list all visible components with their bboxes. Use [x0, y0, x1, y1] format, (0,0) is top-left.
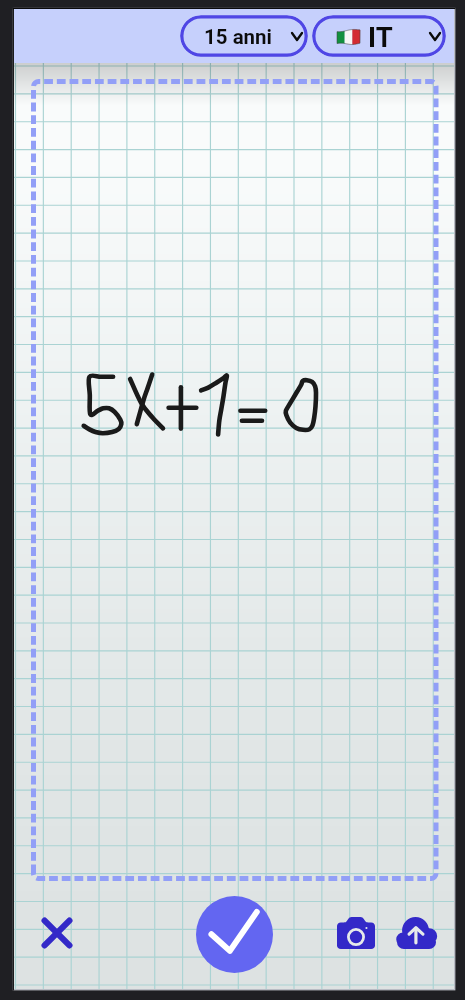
button[interactable]: IT [312, 15, 446, 57]
staticText: 15 anni [204, 25, 273, 49]
button[interactable]: Camera [328, 905, 384, 961]
button[interactable]: Cancel [29, 905, 85, 961]
button[interactable]: Confirm [196, 896, 273, 973]
staticText: IT [368, 21, 393, 53]
button[interactable]: 15 anni [180, 15, 308, 57]
button[interactable]: Upload [388, 905, 444, 961]
